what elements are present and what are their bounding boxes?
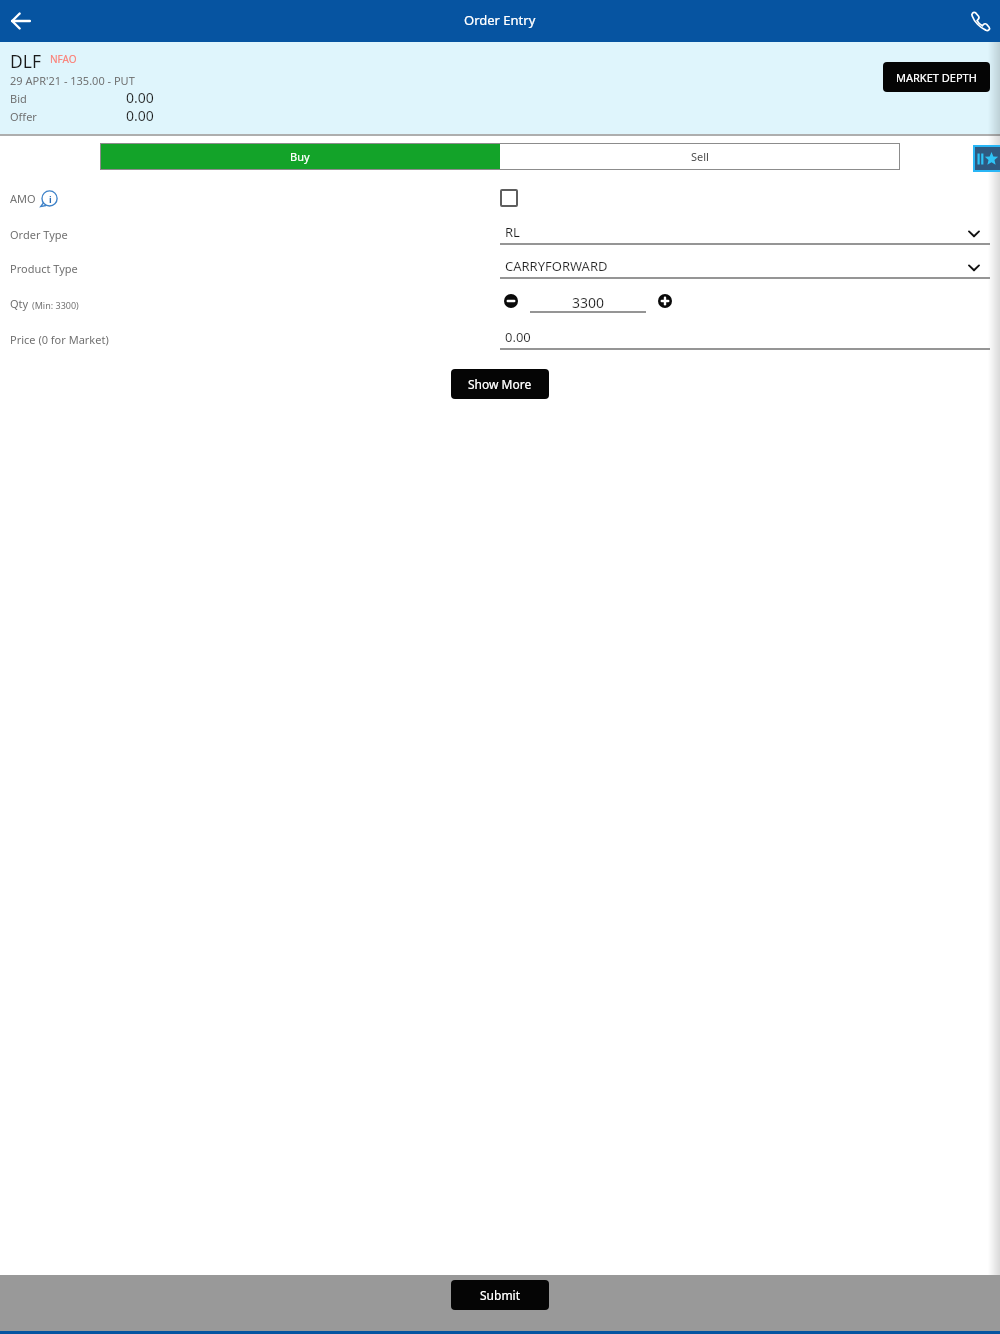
button[interactable]: Watchlist (973, 145, 1000, 172)
staticText: 0.00 (505, 328, 531, 346)
staticText: Order Type (10, 227, 68, 242)
button[interactable]: Sell (500, 143, 900, 170)
button[interactable]: Back (8, 8, 34, 34)
button[interactable]: MARKET DEPTH (883, 62, 990, 92)
staticText: NFAO (50, 52, 77, 66)
staticText: Sell (691, 149, 709, 164)
staticText: MARKET DEPTH (896, 70, 977, 85)
button[interactable]: Show More (451, 369, 549, 399)
staticText: Submit (480, 1287, 521, 1303)
staticText: AMO (10, 191, 36, 206)
staticText: Price (0 for Market) (10, 332, 109, 347)
staticText: RL (505, 223, 520, 241)
staticText: Qty (10, 296, 29, 311)
staticText: Show More (468, 376, 532, 392)
staticText: 0.00 (126, 88, 154, 107)
button[interactable]: Buy (100, 143, 500, 170)
staticText: Product Type (10, 261, 78, 276)
button[interactable]: 0.00 (500, 325, 990, 350)
staticText: (Min: 3300) (32, 299, 79, 311)
button[interactable]: Decrease quantity (504, 294, 518, 308)
button[interactable]: Increase quantity (658, 294, 672, 308)
staticText: Order Entry (464, 11, 536, 29)
staticText: CARRYFORWARD (505, 257, 608, 275)
staticText: 3300 (530, 293, 646, 312)
button[interactable]: Call (968, 9, 992, 33)
staticText: Bid (10, 91, 27, 106)
button[interactable]: Submit (451, 1280, 549, 1310)
staticText: 29 APR'21 - 135.00 - PUT (10, 73, 135, 88)
staticText: Offer (10, 109, 37, 124)
staticText: 0.00 (126, 106, 154, 125)
button[interactable]: AMO info (40, 190, 58, 208)
button[interactable]: CARRYFORWARD (500, 254, 990, 279)
staticText: Buy (290, 149, 310, 164)
staticText: i (49, 193, 52, 205)
button[interactable]: RL (500, 220, 990, 245)
button[interactable]: AMO checkbox (500, 189, 518, 207)
staticText: DLF (10, 49, 42, 73)
